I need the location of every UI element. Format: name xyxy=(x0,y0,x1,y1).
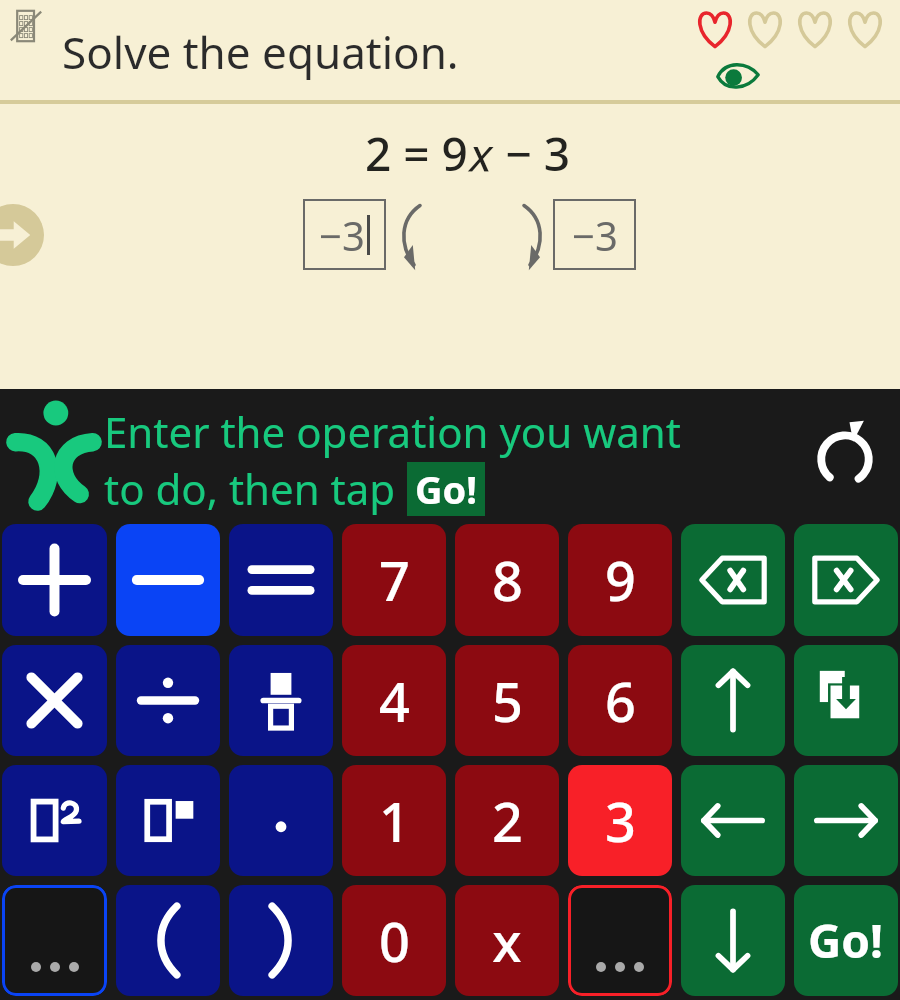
button[interactable]: 8 xyxy=(455,524,559,636)
staticText: Go! xyxy=(808,909,884,972)
button[interactable]: Power xyxy=(116,765,220,876)
staticText: −3 xyxy=(319,208,365,262)
button[interactable]: More xyxy=(568,885,672,996)
button[interactable]: Next step xyxy=(0,204,44,266)
staticText: Enter the operation you want xyxy=(104,403,681,460)
button[interactable]: Right xyxy=(794,765,898,876)
button[interactable]: Plus xyxy=(2,524,107,636)
button[interactable]: 6 xyxy=(568,645,672,756)
staticText: 1 xyxy=(379,784,410,858)
button[interactable]: −3 xyxy=(553,199,636,270)
button[interactable]: Minus xyxy=(116,524,220,636)
button[interactable]: 3 xyxy=(568,765,672,876)
button[interactable]: x xyxy=(455,885,559,996)
staticText: 9 xyxy=(605,543,636,617)
staticText: −3 xyxy=(572,208,618,262)
button[interactable]: 0 xyxy=(342,885,446,996)
button[interactable]: No calculator xyxy=(6,6,46,46)
button[interactable]: Down xyxy=(681,885,785,996)
button[interactable]: Close parenthesis xyxy=(229,885,333,996)
button[interactable]: More xyxy=(2,885,107,996)
button[interactable]: Show hint xyxy=(716,60,760,92)
staticText: 2 = 9𝑥 − 3 xyxy=(365,122,571,185)
button[interactable]: 4 xyxy=(342,645,446,756)
button[interactable]: 7 xyxy=(342,524,446,636)
staticText: 4 xyxy=(379,664,410,738)
staticText: 7 xyxy=(379,543,410,617)
button[interactable]: 5 xyxy=(455,645,559,756)
button[interactable]: 9 xyxy=(568,524,672,636)
button[interactable]: Left xyxy=(681,765,785,876)
staticText: Go! xyxy=(415,463,477,515)
button[interactable]: −3 xyxy=(303,199,386,270)
button[interactable]: Undo xyxy=(802,414,888,500)
button[interactable]: Delete xyxy=(794,524,898,636)
button[interactable]: 2 xyxy=(455,765,559,876)
button[interactable]: Save xyxy=(794,645,898,756)
staticText: 5 xyxy=(492,664,523,738)
button[interactable]: Fraction xyxy=(229,645,333,756)
button[interactable]: Decimal point xyxy=(229,765,333,876)
staticText: to do, then tap xyxy=(104,460,407,517)
staticText: 6 xyxy=(605,664,636,738)
button[interactable]: Up xyxy=(681,645,785,756)
staticText: 2 xyxy=(492,784,523,858)
button[interactable]: Backspace xyxy=(681,524,785,636)
button[interactable]: Multiply xyxy=(2,645,107,756)
button[interactable]: Square xyxy=(2,765,107,876)
button[interactable]: 1 xyxy=(342,765,446,876)
staticText: 3 xyxy=(605,784,636,858)
button[interactable]: Divide xyxy=(116,645,220,756)
button[interactable]: Go! xyxy=(794,885,898,996)
button[interactable]: Equals xyxy=(229,524,333,636)
button[interactable]: Open parenthesis xyxy=(116,885,220,996)
staticText: Solve the equation. xyxy=(62,22,459,82)
staticText: x xyxy=(492,904,522,978)
staticText: 8 xyxy=(492,543,523,617)
staticText: 0 xyxy=(379,904,410,978)
